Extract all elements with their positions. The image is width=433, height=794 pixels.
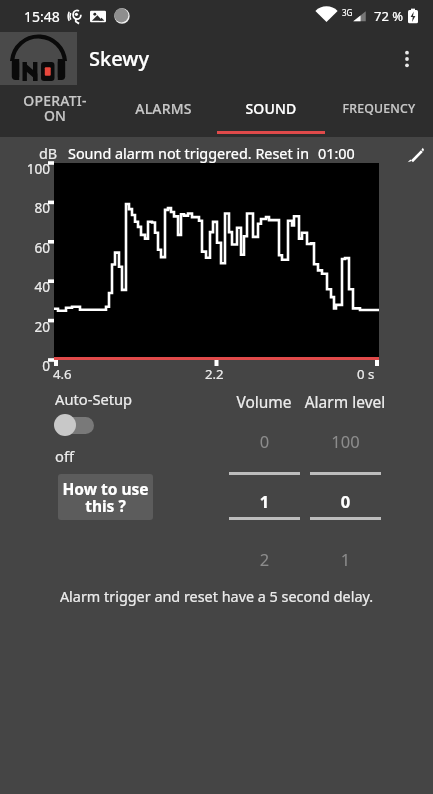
- staticText: SOUND: [245, 99, 297, 118]
- staticText: 60: [0, 238, 50, 257]
- staticText: FREQUENCY: [342, 100, 416, 117]
- staticText: 1: [310, 548, 381, 570]
- staticText: 3G: [342, 7, 353, 18]
- staticText: 01:00: [318, 144, 355, 164]
- staticText: dB: [39, 144, 58, 164]
- staticText: OPERATI- ON: [23, 91, 87, 125]
- button[interactable]: How to use this ?: [58, 474, 153, 520]
- staticText: How to use this ?: [62, 478, 149, 517]
- staticText: ALARMS: [135, 99, 192, 118]
- staticText: 2.2: [205, 365, 224, 383]
- staticText: Alarm trigger and reset have a 5 second …: [0, 587, 433, 607]
- staticText: 72 %: [374, 7, 404, 25]
- staticText: off: [55, 446, 74, 466]
- button[interactable]: ALARMS: [109, 85, 217, 137]
- staticText: 15:48: [24, 7, 60, 26]
- staticText: 2: [229, 548, 300, 570]
- staticText: 0: [0, 356, 50, 375]
- staticText: Volume: [199, 391, 329, 412]
- staticText: Skewy: [89, 45, 149, 72]
- staticText: Sound alarm not triggered. Reset in: [68, 144, 310, 164]
- staticText: 100: [310, 430, 381, 452]
- staticText: Alarm level: [280, 391, 410, 412]
- button[interactable]: SOUND: [217, 85, 325, 137]
- staticText: 80: [0, 198, 50, 217]
- staticText: 4.6: [53, 365, 72, 383]
- staticText: 0: [229, 430, 300, 452]
- staticText: 1: [229, 490, 300, 512]
- button[interactable]: Edit alarm: [402, 141, 428, 167]
- staticText: 20: [0, 317, 50, 336]
- staticText: Auto-Setup: [55, 389, 133, 409]
- button[interactable]: More options: [383, 35, 431, 83]
- button[interactable]: Auto-Setup toggle, off: [54, 412, 98, 438]
- button[interactable]: Skewy app icon: [0, 32, 77, 85]
- staticText: 0 s: [357, 365, 375, 383]
- staticText: 40: [0, 277, 50, 296]
- staticText: 100: [0, 159, 50, 178]
- button[interactable]: OPERATI- ON: [0, 85, 109, 137]
- button[interactable]: FREQUENCY: [325, 85, 433, 137]
- staticText: 0: [310, 490, 381, 512]
